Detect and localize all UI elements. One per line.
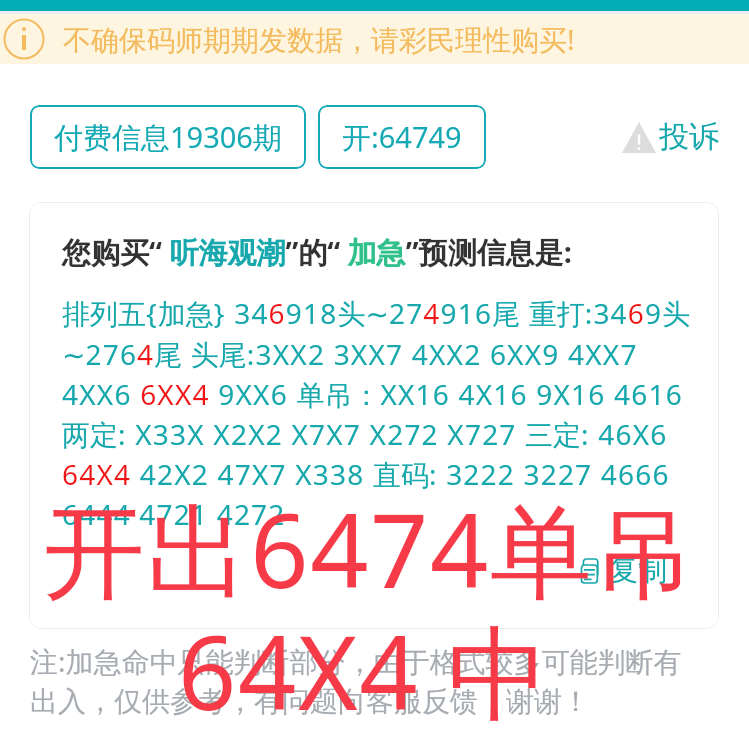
staticText: 不确保码师期期发数据，请彩民理性购买! <box>63 20 575 58</box>
button[interactable]: 投诉 <box>622 118 719 156</box>
staticText: 复制 <box>609 552 667 589</box>
staticText: 投诉 <box>659 118 719 156</box>
staticText: 排列五{加急} 346918头∼274916尾 重打:3469头 ∼2764尾 … <box>62 294 691 534</box>
staticText: 付费信息19306期 <box>54 117 282 157</box>
button[interactable]: 复制 <box>581 552 667 589</box>
button[interactable]: 开:64749 <box>318 105 486 169</box>
staticText: 开出6474单吊 <box>43 479 698 618</box>
staticText: 注:加急命中只能判断部分，由于格式较多可能判断有 出入，仅供参考，有问题向客服反… <box>30 642 682 719</box>
staticText: 开:64749 <box>342 117 462 157</box>
button[interactable]: 付费信息19306期 <box>30 105 306 169</box>
staticText: 64X4 中 <box>178 601 551 728</box>
staticText: 您购买“ 听海观潮”的“ 加急”预测信息是: <box>62 232 572 272</box>
